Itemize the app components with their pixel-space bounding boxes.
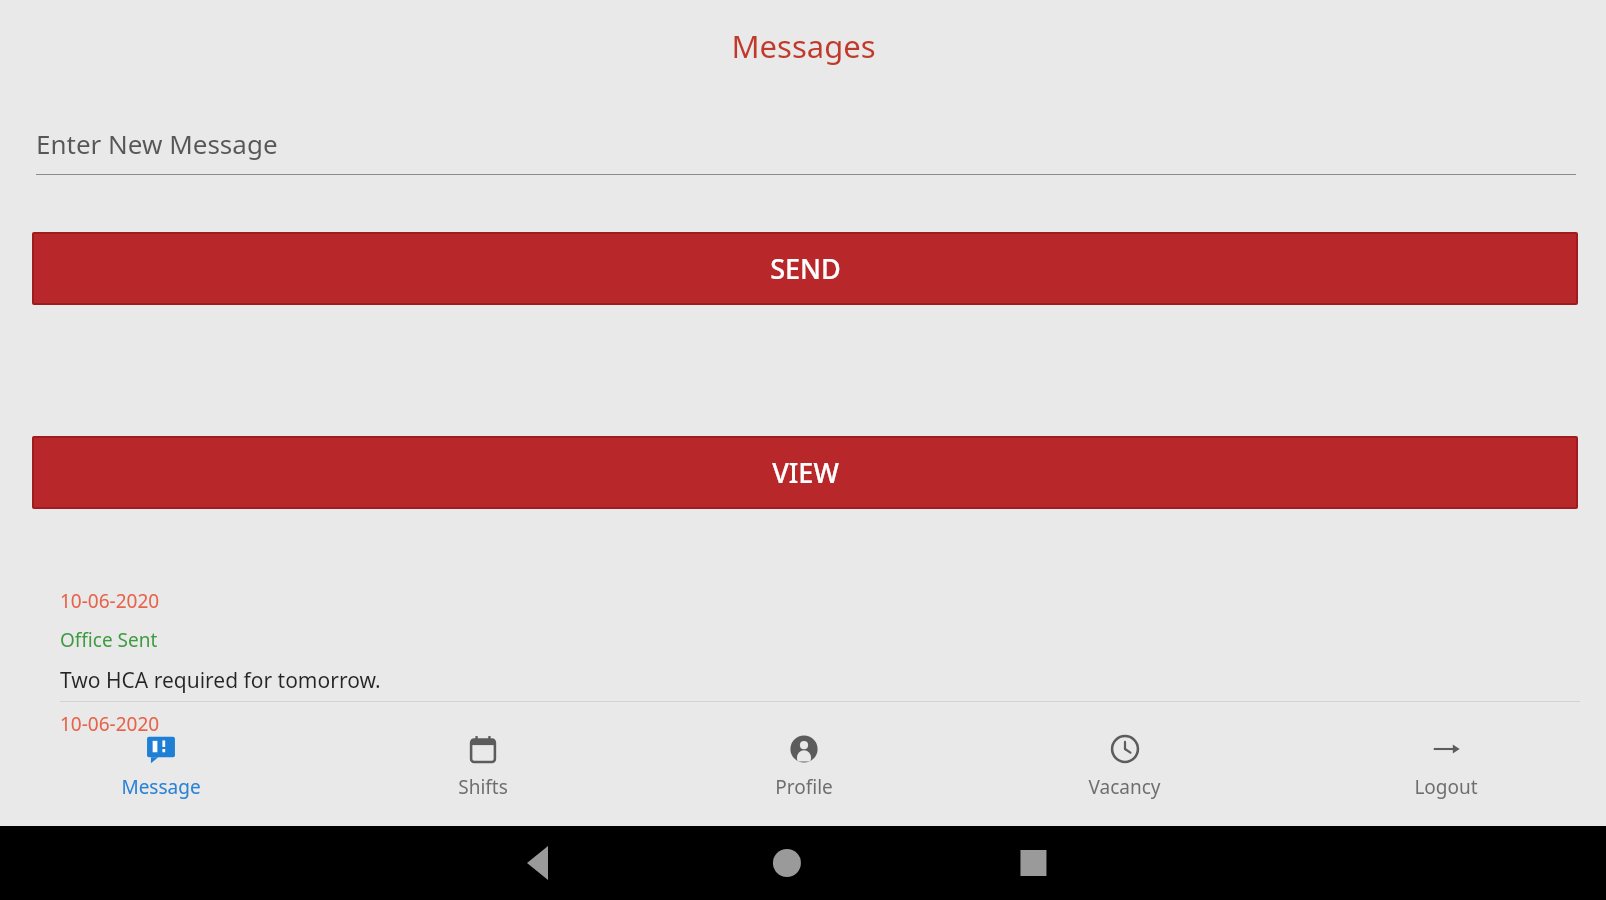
button[interactable]: Message bbox=[0, 722, 322, 800]
staticText: Shifts bbox=[458, 774, 508, 800]
button[interactable]: Profile bbox=[643, 722, 964, 800]
staticText: Office Sent bbox=[60, 627, 158, 653]
staticText: Two HCA required for tomorrow. bbox=[60, 666, 381, 695]
staticText: VIEW bbox=[772, 454, 839, 491]
staticText: Messages bbox=[731, 25, 876, 67]
staticText: Profile bbox=[775, 774, 833, 800]
button[interactable]: VIEW bbox=[34, 438, 1576, 507]
staticText: SEND bbox=[770, 250, 841, 287]
staticText: 10-06-2020 bbox=[60, 588, 160, 614]
staticText: Vacancy bbox=[1088, 774, 1161, 800]
staticText: Logout bbox=[1414, 774, 1478, 800]
button[interactable]: Shifts bbox=[322, 722, 643, 800]
button[interactable]: Logout bbox=[1285, 722, 1606, 800]
staticText: 10-06-2020 bbox=[60, 711, 160, 737]
staticText: Message bbox=[121, 774, 201, 800]
button[interactable]: Vacancy bbox=[964, 722, 1285, 800]
button[interactable]: SEND bbox=[34, 234, 1576, 303]
button[interactable]: 10-06-2020 bbox=[60, 588, 1580, 695]
staticText: Enter New Message bbox=[36, 126, 278, 161]
